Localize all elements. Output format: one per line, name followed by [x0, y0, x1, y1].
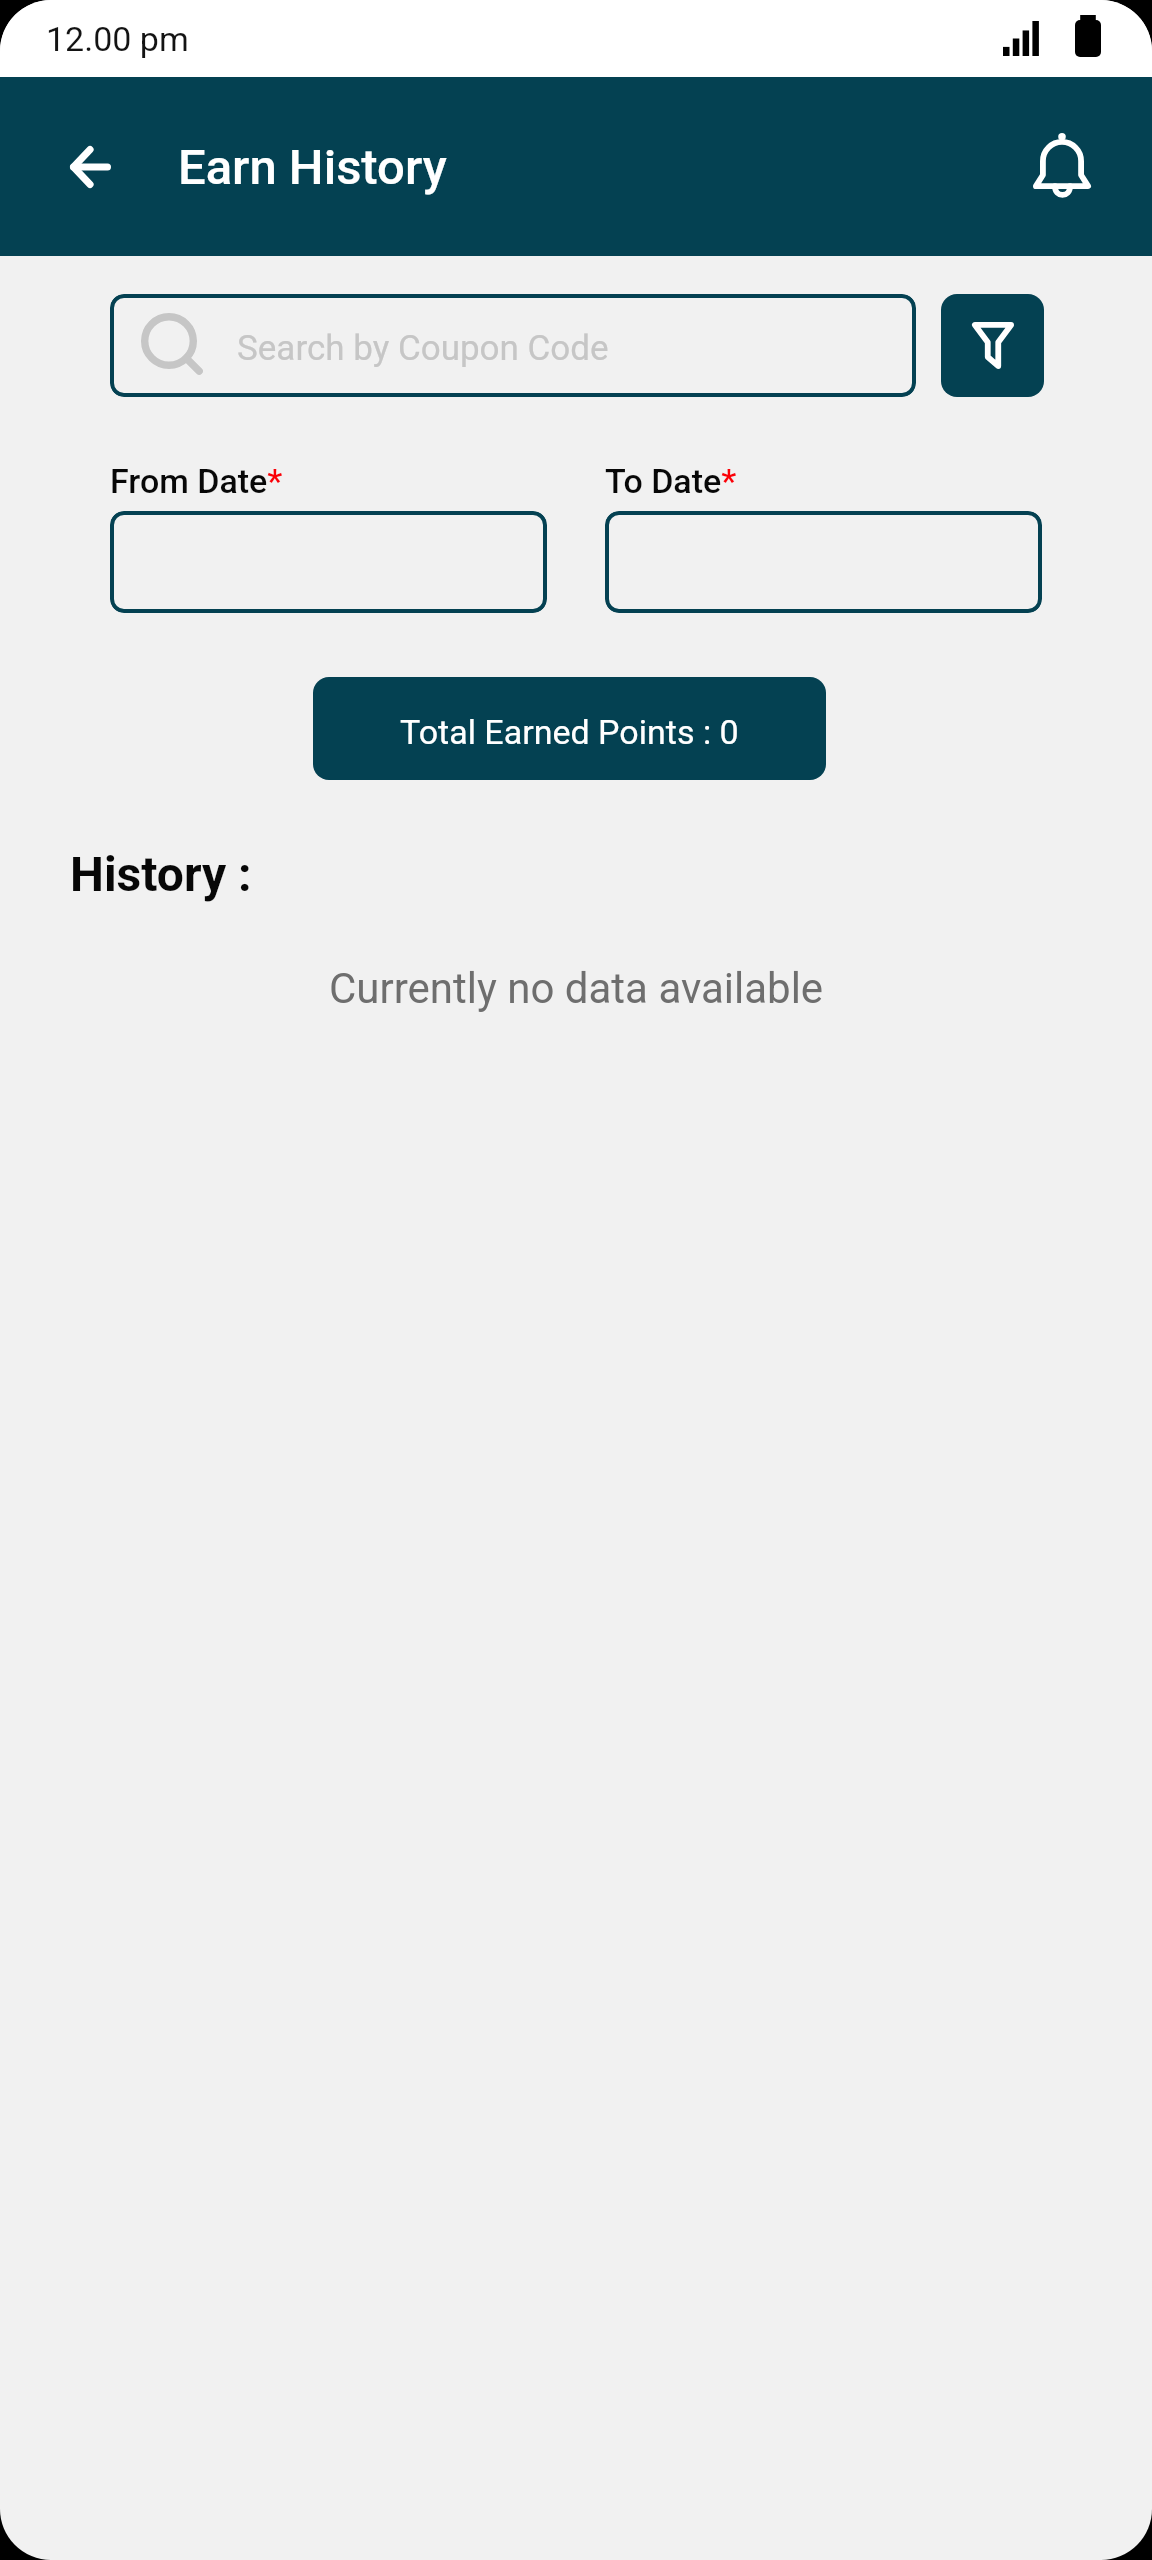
button[interactable]: Back [44, 121, 136, 213]
button[interactable]: Filter [941, 294, 1044, 397]
staticText: Earn History [178, 139, 447, 196]
staticText: Currently no data available [329, 964, 824, 1013]
staticText: History : [70, 846, 252, 902]
button[interactable]: To Date [605, 511, 1042, 613]
button[interactable]: Notifications [1011, 116, 1113, 218]
button[interactable]: Total Earned Points : 0 [313, 677, 826, 780]
staticText: 12.00 pm [46, 19, 189, 59]
staticText: From Date* [110, 461, 283, 501]
staticText: To Date* [605, 461, 737, 501]
button[interactable]: From Date [110, 511, 547, 613]
staticText: Total Earned Points : 0 [400, 712, 739, 752]
button[interactable]: Search by Coupon Code [110, 294, 916, 397]
staticText: Search by Coupon Code [237, 328, 609, 369]
